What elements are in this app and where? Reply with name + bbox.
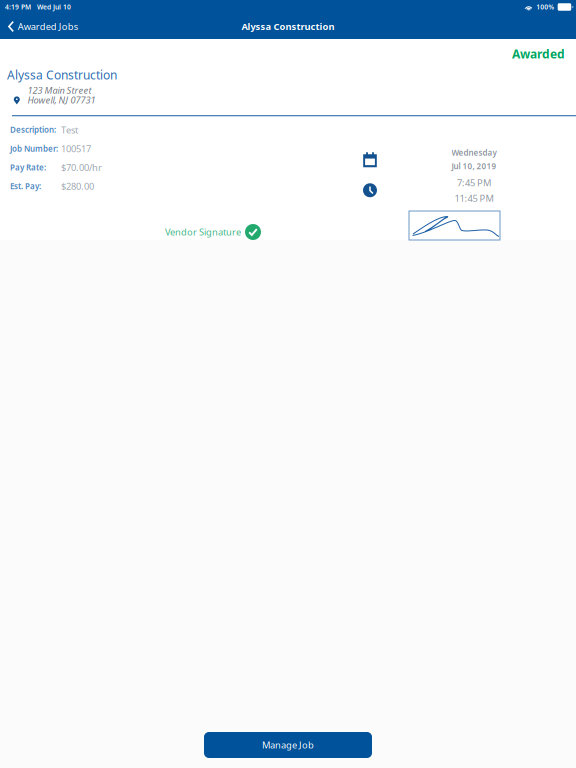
staticText: Alyssa Construction <box>241 20 334 33</box>
staticText: $280.00 <box>61 180 94 192</box>
staticText: Pay Rate: <box>10 162 46 173</box>
staticText: Wed Jul 10 <box>37 3 71 11</box>
staticText: Jul 10, 2019 <box>451 161 496 171</box>
staticText: 11:45 PM <box>454 192 493 204</box>
staticText: 4:19 PM <box>5 3 31 11</box>
staticText: Est. Pay: <box>10 181 41 191</box>
staticText: 100% <box>536 3 554 11</box>
staticText: Vendor Signature <box>165 226 241 238</box>
staticText: 7:45 PM <box>457 176 491 189</box>
staticText: Awarded <box>512 46 565 62</box>
staticText: 123 Main Street <box>27 84 91 96</box>
staticText: Howell, NJ 07731 <box>27 94 95 106</box>
button[interactable]: Awarded Jobs <box>0 14 84 39</box>
staticText: Description: <box>10 124 56 135</box>
staticText: Wednesday <box>451 147 496 158</box>
staticText: Alyssa Construction <box>7 67 117 83</box>
staticText: Awarded Jobs <box>18 20 78 33</box>
staticText: Job Number: <box>10 143 58 154</box>
staticText: Test <box>61 124 78 136</box>
staticText: 100517 <box>61 142 91 155</box>
staticText: Manage Job <box>262 739 314 751</box>
button[interactable]: Manage Job <box>204 732 372 758</box>
staticText: $70.00/hr <box>61 161 102 174</box>
